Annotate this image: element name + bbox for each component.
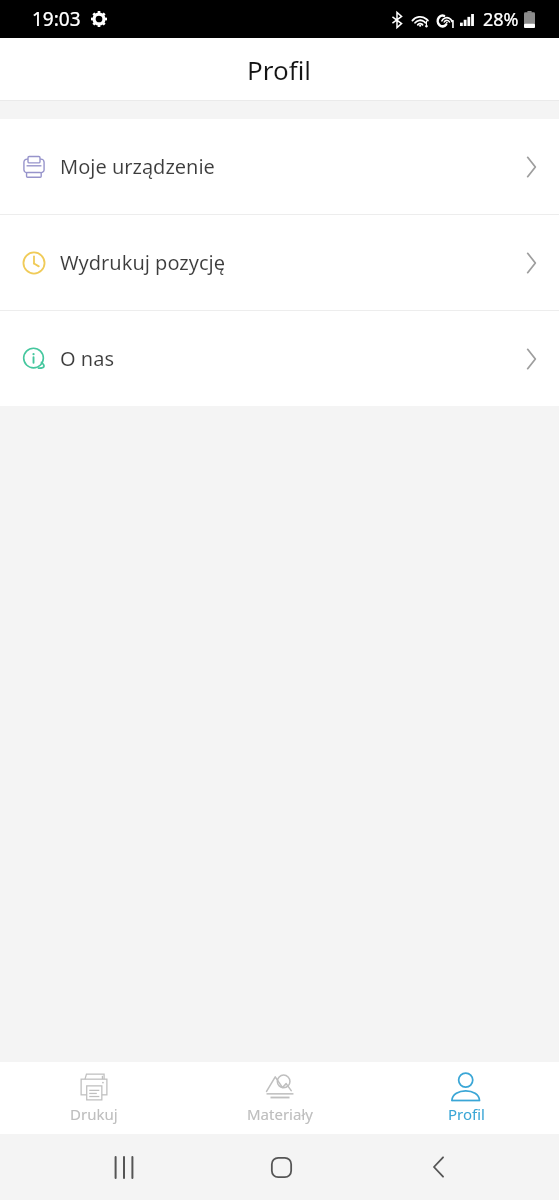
- button[interactable]: Back: [360, 1134, 517, 1200]
- button[interactable]: Moje urządzenie: [0, 119, 559, 214]
- staticText: Profil: [448, 1104, 485, 1124]
- staticText: Profil: [247, 52, 312, 87]
- staticText: 28%: [483, 7, 519, 32]
- button[interactable]: Recents: [45, 1134, 203, 1200]
- button[interactable]: Materiały: [187, 1062, 373, 1134]
- button[interactable]: Wydrukuj pozycję: [0, 215, 559, 310]
- button[interactable]: O nas: [0, 311, 559, 406]
- button[interactable]: Profil: [373, 1062, 559, 1134]
- staticText: Moje urządzenie: [60, 153, 215, 180]
- button[interactable]: Home: [203, 1134, 360, 1200]
- staticText: O nas: [60, 345, 114, 372]
- button[interactable]: Drukuj: [0, 1062, 187, 1134]
- staticText: Materiały: [247, 1104, 313, 1124]
- staticText: 19:03: [32, 6, 81, 32]
- staticText: Wydrukuj pozycję: [60, 249, 225, 276]
- staticText: Drukuj: [70, 1104, 118, 1124]
